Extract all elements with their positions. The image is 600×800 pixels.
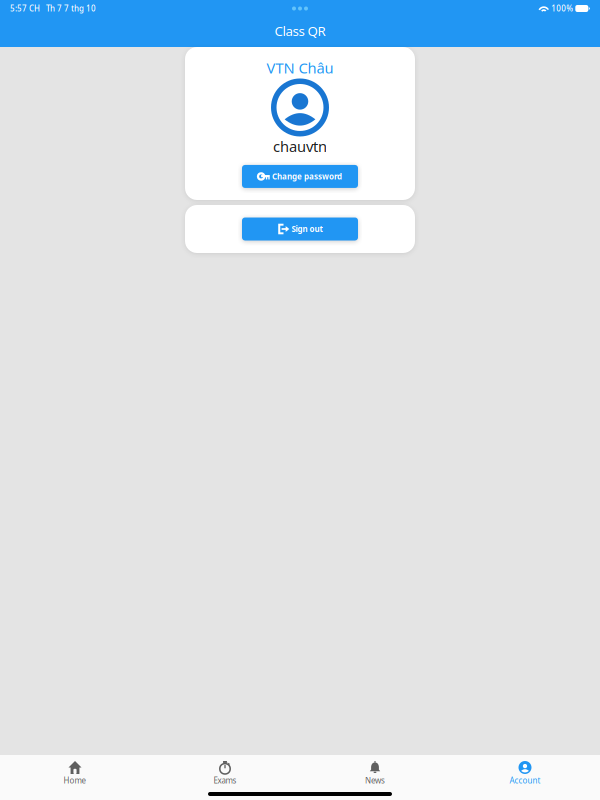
button[interactable]: Exams (150, 755, 300, 788)
staticText: Change password (272, 171, 342, 182)
button[interactable]: Change password (242, 165, 358, 188)
button[interactable]: Home (0, 755, 150, 788)
staticText: chauvtn (273, 136, 327, 156)
staticText: Account (509, 775, 540, 786)
staticText: 5:57 CH (10, 3, 40, 14)
staticText: News (365, 775, 385, 786)
staticText: Home (63, 775, 86, 786)
staticText: Class QR (274, 22, 325, 40)
button[interactable]: News (300, 755, 450, 788)
staticText: Th 7 7 thg 10 (46, 3, 96, 14)
staticText: VTN Châu (266, 58, 333, 77)
button[interactable]: Sign out (242, 217, 358, 240)
staticText: Exams (213, 775, 236, 786)
staticText: 100% (551, 3, 573, 14)
button[interactable]: Account (450, 755, 600, 788)
staticText: Sign out (291, 224, 322, 234)
